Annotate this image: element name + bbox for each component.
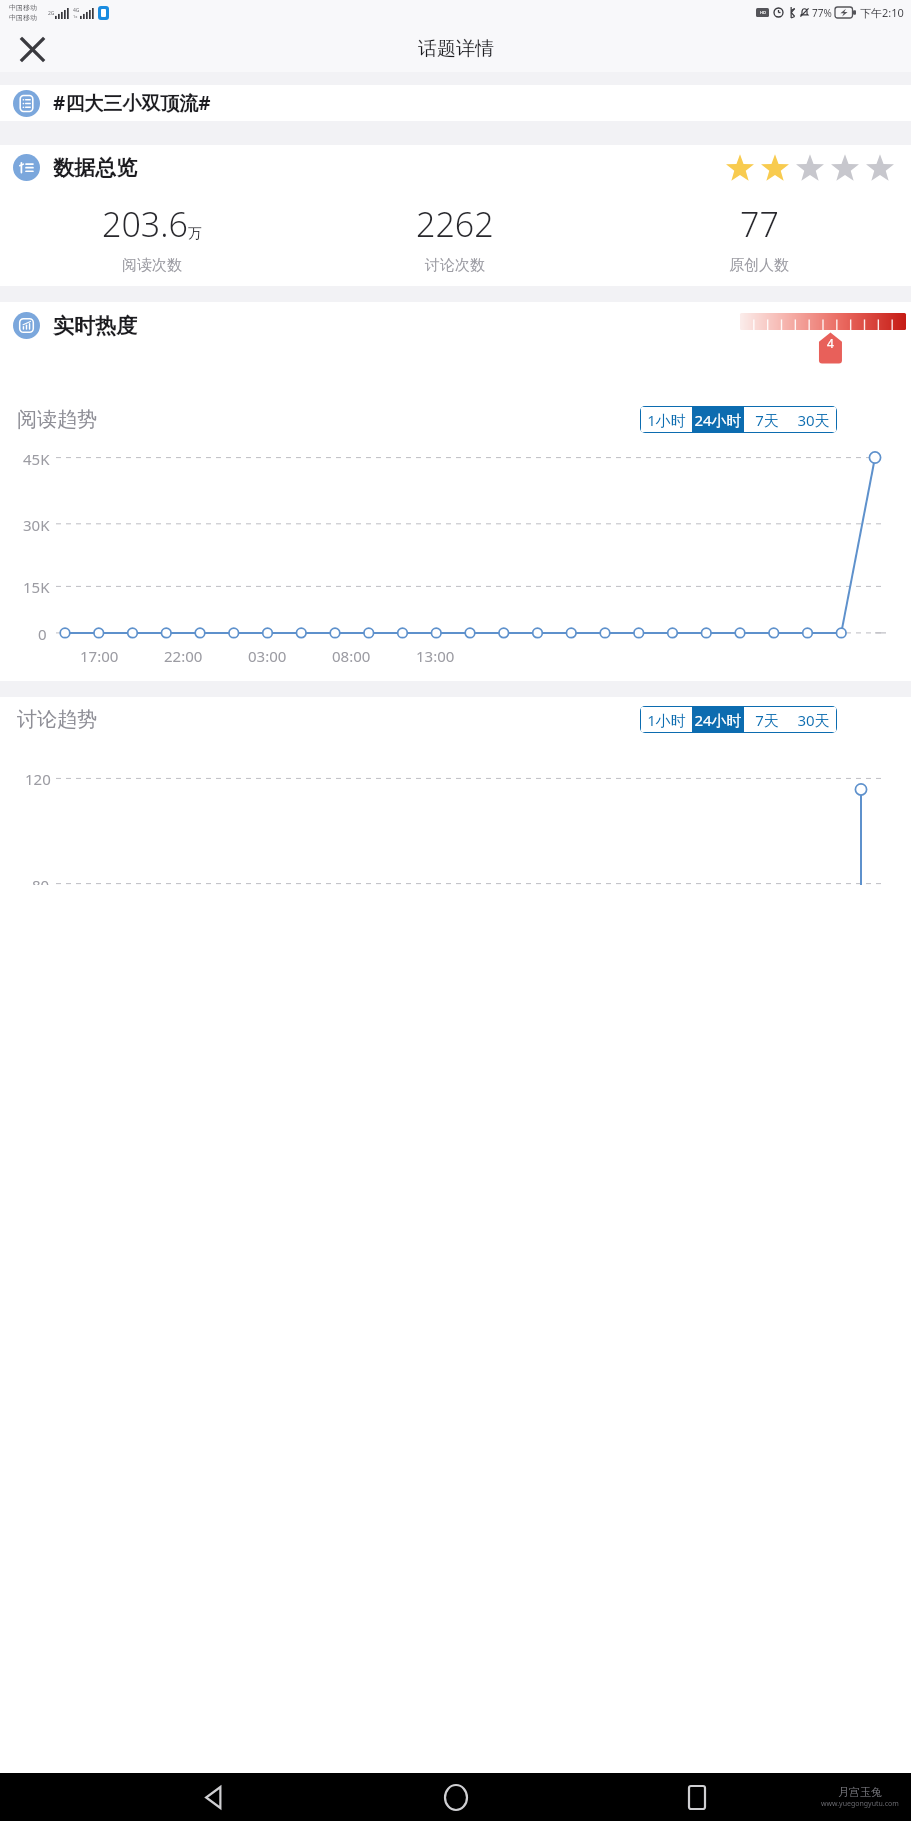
button[interactable]: 7天 [744,707,790,732]
staticText: 讨论次数 [425,256,485,275]
staticText: 实时热度 [53,313,137,339]
staticText: 中国移动 [9,3,37,12]
staticText: www.yuegongyutu.com [821,1799,899,1809]
button[interactable]: #四大三小双顶流# [0,85,911,121]
staticText: 77% [812,6,832,20]
staticText: 15K [23,577,50,597]
staticText: 2262 [416,201,494,247]
staticText: 阅读趋势 [17,407,97,432]
staticText: 4G [73,7,80,14]
staticText: 203.6 [102,201,188,247]
staticText: 1小时 [647,410,686,430]
button[interactable]: 1小时 [641,407,692,432]
button[interactable]: Recents [670,1773,724,1821]
button[interactable]: 24小时 [692,407,744,432]
staticText: 7天 [755,410,779,430]
staticText: 话题详情 [418,37,494,61]
staticText: 80 [32,875,50,885]
staticText: 下午2:10 [860,5,904,20]
staticText: 1x [73,14,78,19]
staticText: 数据总览 [53,155,137,181]
staticText: 22:00 [164,646,203,666]
staticText: #四大三小双顶流# [53,90,211,116]
staticText: 24小时 [694,710,742,730]
staticText: 1小时 [647,710,686,730]
staticText: 0 [38,624,47,644]
staticText: 万 [188,225,202,243]
staticText: 45K [23,449,50,469]
staticText: 讨论趋势 [17,707,97,732]
staticText: 17:00 [80,646,119,666]
staticText: 77 [740,201,779,247]
button[interactable]: 30天 [790,707,836,732]
staticText: 30天 [797,410,830,430]
button[interactable]: Home [429,1773,483,1821]
button[interactable]: Close [12,29,52,69]
staticText: 阅读次数 [122,256,182,275]
staticText: 中国移动 [9,13,37,22]
staticText: 03:00 [248,646,287,666]
staticText: 原创人数 [729,256,789,275]
button[interactable]: 7天 [744,407,790,432]
staticText: 13:00 [416,646,455,666]
button[interactable]: Back [187,1773,241,1821]
staticText: 30K [23,515,50,535]
staticText: 月宫玉兔 [838,1785,882,1799]
staticText: HD [760,10,766,15]
staticText: 4 [827,335,834,351]
staticText: 120 [25,769,51,789]
staticText: 08:00 [332,646,371,666]
staticText: 24小时 [694,410,742,430]
staticText: 30天 [797,710,830,730]
button[interactable]: 24小时 [692,707,744,732]
staticText: 7天 [755,710,779,730]
button[interactable]: 1小时 [641,707,692,732]
button[interactable]: 30天 [790,407,836,432]
staticText: 2G [48,10,55,17]
